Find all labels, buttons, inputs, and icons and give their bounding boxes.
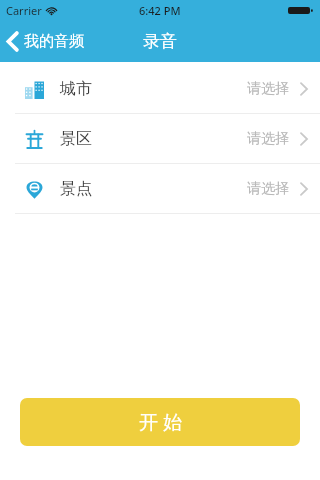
staticText: Carrier — [6, 3, 42, 18]
staticText: 城市 — [60, 79, 92, 99]
staticText: 开 始 — [139, 409, 182, 435]
button[interactable]: Back — [0, 28, 94, 55]
staticText: 我的音频 — [24, 32, 84, 51]
other: Back — [7, 32, 19, 51]
staticText: 6:42 PM — [139, 3, 181, 18]
staticText: 录音 — [143, 31, 177, 52]
button[interactable]: 开 始 — [20, 398, 300, 446]
staticText: 景区 — [60, 129, 92, 149]
staticText: 请选择 — [247, 80, 289, 98]
button[interactable]: 景点 — [0, 164, 320, 213]
staticText: 景点 — [60, 179, 92, 199]
staticText: 请选择 — [247, 130, 289, 148]
button[interactable]: 景区 — [0, 114, 320, 163]
staticText: 请选择 — [247, 180, 289, 198]
button[interactable]: 城市 — [0, 64, 320, 113]
